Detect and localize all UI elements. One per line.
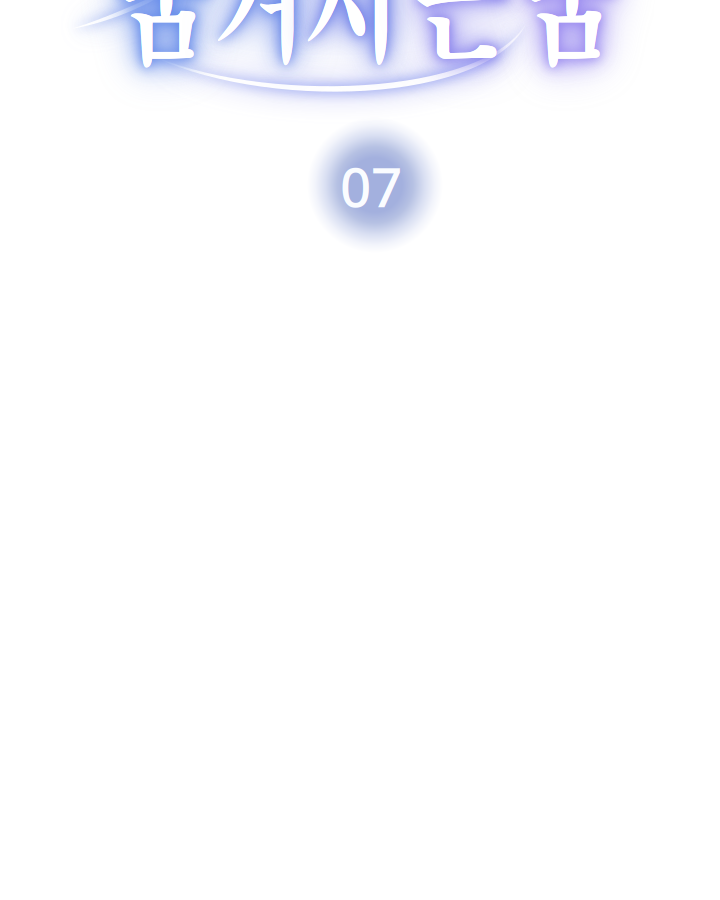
staticText: 지 — [307, 0, 403, 79]
staticText: 지 — [307, 0, 403, 79]
staticText: 는 — [414, 0, 510, 79]
staticText: 숨 — [522, 0, 618, 79]
staticText: 숨 — [116, 0, 212, 79]
staticText: 07 — [340, 150, 402, 222]
staticText: 숨 — [116, 0, 212, 79]
staticText: 숨 — [522, 0, 618, 79]
staticText: 겨 — [213, 0, 309, 79]
staticText: 겨 — [213, 0, 309, 79]
staticText: 는 — [414, 0, 510, 79]
